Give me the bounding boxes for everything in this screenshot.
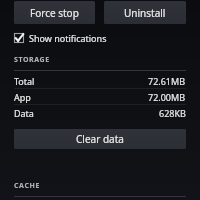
staticText: Uninstall (124, 6, 166, 20)
staticText: CACHE (14, 181, 40, 191)
staticText: Total (14, 75, 35, 87)
staticText: App (14, 91, 31, 103)
staticText: Data (14, 107, 34, 119)
button[interactable]: Data (0, 105, 200, 120)
button[interactable]: Uninstall (104, 1, 186, 24)
button[interactable]: Total (0, 73, 200, 88)
staticText: Show notifications (29, 32, 107, 44)
staticText: 72.00MB (148, 91, 186, 103)
button[interactable]: Clear data (14, 129, 186, 149)
staticText: Clear data (76, 132, 124, 146)
staticText: 628KB (159, 107, 186, 119)
button[interactable]: Show notifications (0, 29, 200, 47)
staticText: STORAGE (14, 55, 50, 65)
staticText: 72.61MB (148, 75, 186, 87)
button[interactable]: Force stop (14, 1, 95, 24)
button[interactable]: App (0, 89, 200, 104)
staticText: Force stop (30, 6, 79, 20)
